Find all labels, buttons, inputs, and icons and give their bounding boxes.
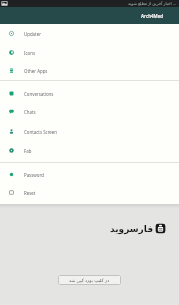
other: Screenshot notification	[1, 1, 8, 6]
button[interactable]: Password	[0, 165, 179, 184]
staticText: Icons	[24, 50, 36, 56]
staticText: در کلیپ بورد کپی شد	[69, 277, 110, 283]
button[interactable]: Icons	[0, 43, 179, 62]
staticText: Chats	[24, 109, 36, 115]
button[interactable]: Reset	[0, 183, 179, 202]
staticText: Contacts Screen	[24, 129, 58, 135]
staticText: Fab	[24, 148, 32, 154]
button[interactable]: Conversations	[0, 84, 179, 103]
staticText: Conversations	[24, 91, 54, 97]
button[interactable]: Contacts Screen	[0, 122, 179, 141]
staticText: Updater	[24, 31, 41, 37]
staticText: Other Apps	[24, 68, 48, 74]
button[interactable]: Updater	[0, 24, 179, 43]
button[interactable]: در کلیپ بورد کپی شد	[58, 275, 121, 285]
button[interactable]: Chats	[0, 102, 179, 121]
staticText: اخبار آخرین از مطلع شوید ...	[128, 1, 176, 7]
button[interactable]: Other Apps	[0, 61, 179, 80]
staticText: Reset	[24, 190, 36, 196]
button[interactable]: Fab	[0, 141, 179, 160]
staticText: Arch4Med	[141, 13, 164, 19]
staticText: فارسروید	[110, 224, 154, 234]
staticText: Password	[24, 172, 44, 178]
